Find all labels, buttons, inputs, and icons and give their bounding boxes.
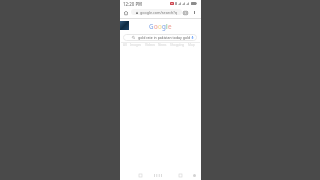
staticText: Maps [188, 43, 195, 47]
staticText: o [158, 22, 162, 30]
staticText: G [149, 22, 154, 30]
staticText: g [162, 22, 166, 30]
staticText: gold rate in pakistan today gold [138, 35, 191, 40]
button[interactable]: Home [153, 171, 162, 180]
button[interactable]: Recent apps [176, 171, 185, 180]
button[interactable]: Switch tabs [181, 8, 190, 17]
staticText: o [154, 22, 158, 30]
staticText: l [166, 22, 168, 30]
staticText: Images [130, 43, 142, 47]
staticText: Shopping [170, 43, 185, 47]
staticText: google.com/search?q [140, 10, 178, 15]
button[interactable]: gold rate in pakistan today gold [123, 34, 197, 41]
button[interactable]: Menu [190, 171, 199, 180]
staticText: 12:20 PM [123, 1, 143, 7]
staticText: News [158, 43, 167, 47]
staticText: e [168, 22, 172, 30]
staticText: Videos [145, 43, 155, 47]
staticText: All [123, 43, 127, 47]
button[interactable]: More options [190, 8, 199, 17]
button[interactable]: Back [136, 171, 145, 180]
button[interactable]: google.com/search?q [131, 9, 182, 15]
button[interactable]: Home [121, 8, 130, 17]
